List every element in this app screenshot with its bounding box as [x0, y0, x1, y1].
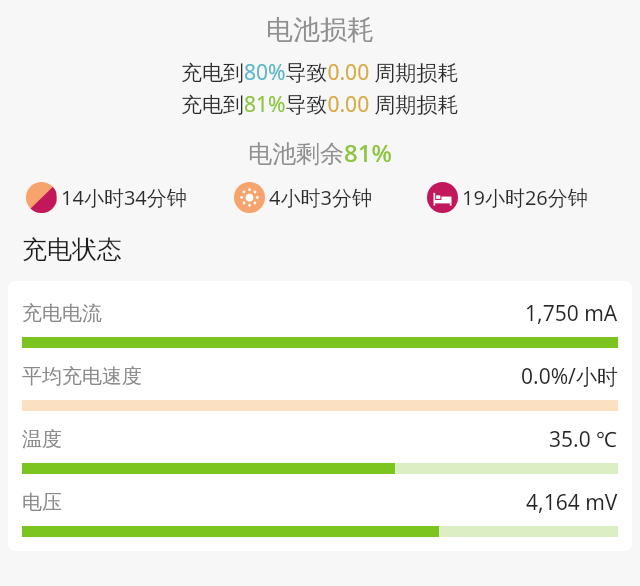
staticText: 19小时26分钟	[462, 184, 588, 211]
button[interactable]: 平均充电速度	[22, 353, 618, 416]
staticText: 0.0%/小时	[521, 362, 618, 391]
staticText: 35.0 ℃	[549, 425, 618, 454]
button[interactable]: 充电电流	[22, 290, 618, 353]
staticText: 充电到80%导致0.00 周期损耗	[181, 58, 459, 87]
button[interactable]: Screen on time	[234, 182, 427, 213]
button[interactable]: 充电电流	[8, 281, 632, 551]
staticText: 4,164 mV	[526, 488, 618, 517]
button[interactable]: Standby time	[427, 182, 630, 213]
staticText: 电压	[22, 490, 62, 515]
staticText: 电池损耗	[266, 13, 374, 47]
staticText: 充电到81%导致0.00 周期损耗	[181, 90, 459, 119]
staticText: 温度	[22, 427, 62, 452]
button[interactable]: Remaining battery time	[26, 182, 234, 213]
button[interactable]: 电压	[22, 479, 618, 542]
button[interactable]: 温度	[22, 416, 618, 479]
staticText: 14小时34分钟	[61, 184, 187, 211]
staticText: 平均充电速度	[22, 364, 142, 389]
staticText: 充电电流	[22, 301, 102, 326]
staticText: 电池剩余81%	[248, 136, 392, 169]
staticText: 1,750 mA	[525, 299, 618, 328]
staticText: 4小时3分钟	[269, 184, 372, 211]
staticText: 充电状态	[22, 234, 122, 265]
